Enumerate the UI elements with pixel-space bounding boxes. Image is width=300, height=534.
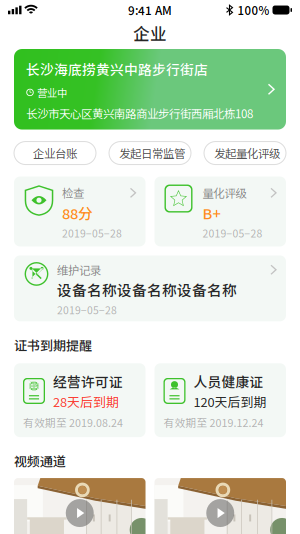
button[interactable]: Play video — [154, 478, 286, 534]
staticText: 证书到期提醒 — [14, 335, 92, 354]
staticText: 人员健康证 — [193, 371, 263, 391]
staticText: 120天后到期 — [193, 392, 266, 411]
button[interactable]: 发起日常监管 — [109, 141, 191, 164]
staticText: 28天后到期 — [53, 392, 119, 411]
staticText: 发起日常监管 — [119, 145, 185, 161]
button[interactable]: 检查 — [14, 176, 145, 246]
staticText: 维护记录 — [57, 261, 101, 278]
staticText: 长沙海底捞黄兴中路步行街店 — [26, 59, 208, 79]
button[interactable]: Play video — [14, 478, 145, 534]
staticText: 视频通道 — [14, 451, 66, 470]
staticText: 检查 — [62, 184, 84, 201]
staticText: 2019−05−28 — [62, 225, 122, 240]
staticText: 有效期至 2019.12.24 — [163, 415, 263, 430]
button[interactable]: 企业台账 — [14, 141, 96, 164]
button[interactable]: 人员健康证 — [154, 363, 286, 437]
button[interactable]: 维护记录 — [14, 255, 286, 321]
staticText: 企业 — [133, 21, 167, 45]
staticText: 2019−05−28 — [57, 302, 117, 317]
staticText: 有效期至 2019.08.24 — [23, 415, 123, 430]
staticText: 发起量化评级 — [214, 145, 280, 161]
staticText: 量化评级 — [202, 184, 246, 201]
button[interactable]: 发起量化评级 — [204, 141, 286, 164]
staticText: B+ — [202, 202, 220, 223]
button[interactable]: 量化评级 — [154, 176, 286, 246]
staticText: 营业中 — [37, 85, 67, 100]
staticText: 9:41 AM — [128, 1, 172, 18]
button[interactable]: 经营许可证 — [14, 363, 145, 437]
button[interactable]: 长沙海底捞黄兴中路步行街店 — [14, 49, 286, 129]
staticText: 设备名称设备名称设备名称 — [57, 279, 237, 300]
staticText: 2019−05−28 — [202, 225, 262, 240]
staticText: 100% — [237, 2, 269, 18]
staticText: 企业台账 — [33, 145, 77, 161]
staticText: 经营许可证 — [53, 371, 123, 391]
staticText: 88分 — [62, 202, 93, 223]
staticText: 长沙市天心区黄兴南路商业步行街西厢北栋108 — [26, 105, 253, 121]
